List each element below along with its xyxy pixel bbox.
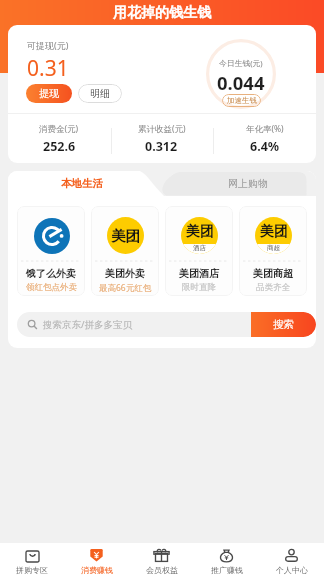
button[interactable]: 搜索京东/拼多多宝贝 xyxy=(17,312,251,337)
staticText: 提现 xyxy=(39,87,59,100)
button[interactable]: 美团 xyxy=(239,206,307,296)
staticText: 6.4% xyxy=(250,138,280,155)
button[interactable]: 搜索 xyxy=(251,312,316,337)
button[interactable]: 网上购物 xyxy=(180,171,316,196)
other: 消费赚钱 xyxy=(88,549,105,562)
button[interactable]: 加速生钱 xyxy=(222,94,261,107)
button[interactable]: 饿了么外卖 xyxy=(17,206,85,296)
button[interactable]: 会员权益 xyxy=(129,543,194,576)
staticText: 拼购专区 xyxy=(16,565,48,575)
staticText: 0.312 xyxy=(145,138,178,155)
staticText: 美团 xyxy=(186,223,214,241)
staticText: 饿了么外卖 xyxy=(26,267,76,280)
staticText: 美团 xyxy=(111,227,140,245)
staticText: 酒店 xyxy=(193,244,206,252)
staticText: 用花掉的钱生钱 xyxy=(113,4,211,22)
staticText: 加速生钱 xyxy=(227,96,257,105)
staticText: 0.31 xyxy=(27,54,69,83)
button[interactable]: 消费赚钱 xyxy=(64,543,129,576)
staticText: 可提现(元) xyxy=(27,39,69,51)
button[interactable]: 年化率(%) xyxy=(213,114,316,163)
staticText: 消费赚钱 xyxy=(81,565,113,575)
button[interactable]: 个人中心 xyxy=(259,543,324,576)
staticText: 推广赚钱 xyxy=(211,565,243,575)
staticText: 网上购物 xyxy=(228,177,268,190)
other: 会员权益 xyxy=(153,549,170,562)
staticText: 品类齐全 xyxy=(256,282,290,293)
staticText: 美团酒店 xyxy=(179,267,219,280)
button[interactable]: 本地生活 xyxy=(8,171,156,196)
other: 推广赚钱 xyxy=(218,549,235,562)
staticText: 会员权益 xyxy=(146,565,178,575)
staticText: 美团商超 xyxy=(253,267,293,280)
button[interactable]: 提现 xyxy=(26,84,72,103)
staticText: 最高66元红包 xyxy=(99,282,152,294)
other: 个人中心 xyxy=(283,549,300,562)
button[interactable]: 美团 xyxy=(165,206,233,296)
staticText: 今日生钱(元) xyxy=(219,58,263,69)
staticText: 搜索 xyxy=(273,318,294,331)
button[interactable]: 推广赚钱 xyxy=(194,543,259,576)
staticText: 美团 xyxy=(260,223,288,241)
button[interactable]: 美团 xyxy=(91,206,159,296)
staticText: 搜索京东/拼多多宝贝 xyxy=(43,318,133,331)
button[interactable]: 累计收益(元) xyxy=(110,114,213,163)
staticText: 年化率(%) xyxy=(246,123,284,135)
button[interactable]: 消费金(元) xyxy=(8,114,110,163)
staticText: 累计收益(元) xyxy=(138,123,186,135)
button[interactable]: 明细 xyxy=(78,84,122,103)
staticText: 本地生活 xyxy=(61,177,103,190)
button[interactable]: 拼购专区 xyxy=(0,543,64,576)
staticText: 明细 xyxy=(90,87,110,100)
staticText: 个人中心 xyxy=(276,565,308,575)
other: 拼购专区 xyxy=(24,549,41,562)
staticText: 252.6 xyxy=(43,138,76,155)
staticText: 商超 xyxy=(267,244,280,252)
staticText: 美团外卖 xyxy=(105,267,145,280)
staticText: 消费金(元) xyxy=(39,123,79,135)
staticText: 限时直降 xyxy=(182,282,216,293)
staticText: 领红包点外卖 xyxy=(26,282,77,293)
staticText: 0.044 xyxy=(217,70,265,95)
